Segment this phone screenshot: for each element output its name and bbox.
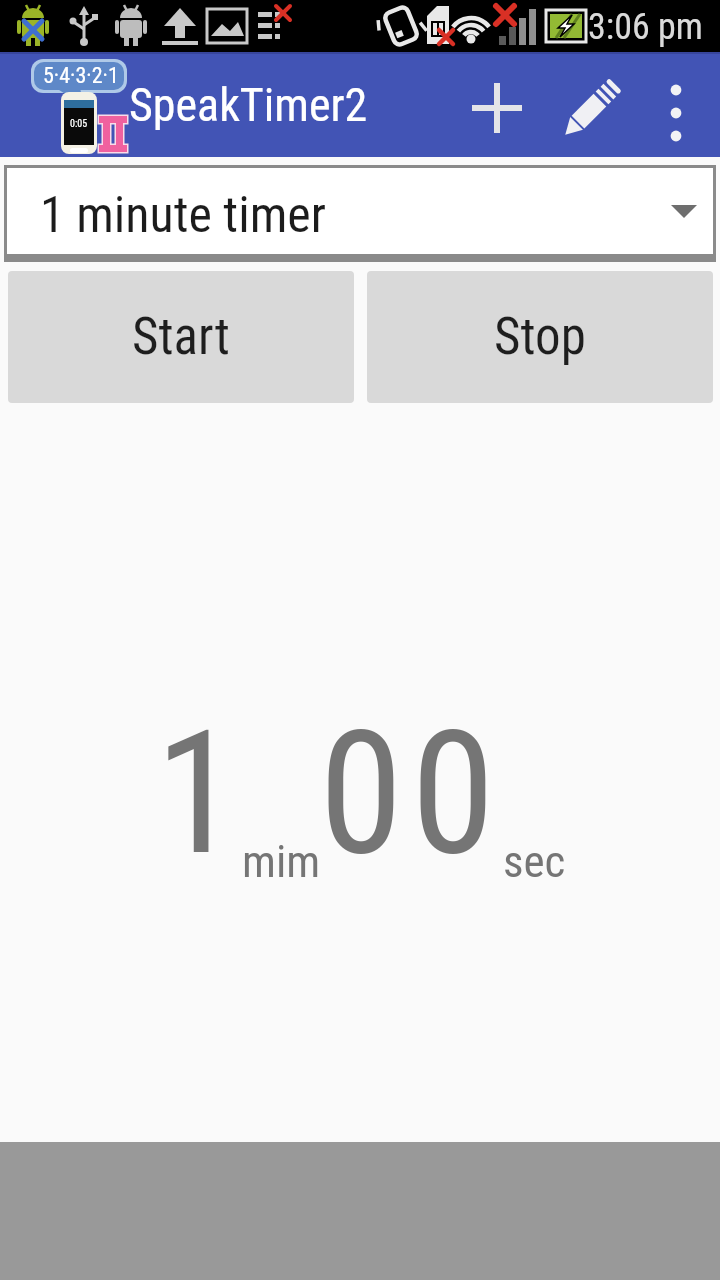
staticText: 3:06 pm bbox=[588, 6, 703, 48]
button[interactable] bbox=[554, 74, 626, 146]
staticText: 5·4·3·2·1 bbox=[43, 63, 119, 89]
staticText: Start bbox=[132, 307, 230, 367]
button[interactable] bbox=[646, 73, 706, 153]
staticText: 1 minute timer bbox=[40, 186, 326, 245]
button[interactable]: Start bbox=[8, 271, 354, 403]
button[interactable] bbox=[461, 72, 533, 144]
staticText: SpeakTimer2 bbox=[129, 78, 368, 132]
staticText: 0:05 bbox=[70, 118, 88, 130]
staticText: Stop bbox=[494, 307, 586, 367]
staticText: 0 bbox=[319, 694, 403, 893]
staticText: 0 bbox=[411, 694, 495, 893]
staticText: 1 bbox=[155, 694, 239, 893]
staticText: sec bbox=[503, 835, 566, 888]
staticText: mim bbox=[242, 835, 321, 888]
button[interactable]: Stop bbox=[367, 271, 713, 403]
button[interactable]: 1 minute timer bbox=[4, 165, 716, 262]
